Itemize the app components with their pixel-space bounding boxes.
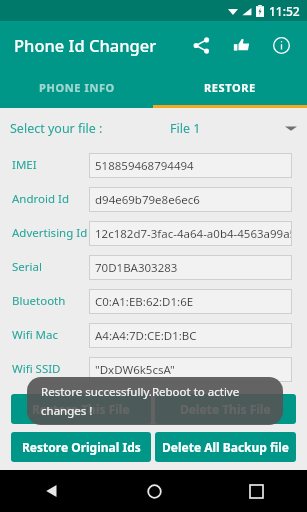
button[interactable]: Delete All Backup file [155, 432, 296, 462]
staticText: Bluetooth Mac [12, 293, 89, 309]
staticText: Wifi SSID [12, 361, 61, 377]
button[interactable]: PHONE INFO [0, 69, 153, 105]
button[interactable]: Home [103, 470, 205, 512]
button[interactable]: 70D1BA303283 [89, 255, 292, 280]
staticText: C0:A1:EB:62:D1:6E [95, 294, 194, 310]
button[interactable]: Rate [221, 25, 261, 65]
staticText: Android Id [12, 191, 70, 207]
button[interactable]: Back [0, 470, 103, 512]
staticText: d94e69b79e8e6ec6 [95, 192, 200, 208]
staticText: 70D1BA303283 [95, 260, 178, 276]
staticText: Select your file : [10, 120, 103, 137]
button[interactable]: A4:A4:7D:CE:D1:BC [89, 323, 292, 348]
button[interactable]: Share [181, 25, 221, 65]
button[interactable]: Info [261, 25, 301, 65]
staticText: PHONE INFO [39, 80, 115, 95]
button[interactable]: d94e69b79e8e6ec6 [89, 187, 292, 212]
staticText: A4:A4:7D:CE:D1:BC [95, 328, 197, 344]
button[interactable]: Delete This File [155, 394, 296, 424]
staticText: Restore Original Ids [22, 439, 141, 455]
button[interactable]: Restore This File [11, 394, 151, 424]
staticText: 518859468794494 [95, 158, 194, 174]
staticText: Phone Id Changer [14, 34, 157, 56]
button[interactable]: Recents [205, 470, 307, 512]
staticText: RESTORE [204, 80, 256, 95]
staticText: "DxDW6k5csA" [95, 362, 175, 378]
button[interactable]: RESTORE [153, 69, 307, 105]
staticText: Restore This File [32, 401, 130, 417]
staticText: Delete All Backup file [162, 439, 290, 455]
staticText: File 1 [170, 120, 201, 137]
staticText: Restore successfully.Reboot to active [41, 384, 240, 400]
button[interactable]: Select your file : [0, 108, 307, 148]
other: Dropdown [285, 122, 297, 134]
button[interactable]: C0:A1:EB:62:D1:6E [89, 289, 292, 314]
staticText: Wifi Mac [12, 327, 58, 343]
staticText: 12c182d7-3fac-4a64-a0b4-4563a99a50 [95, 226, 292, 242]
staticText: Advertising Id [12, 225, 88, 241]
button[interactable]: 12c182d7-3fac-4a64-a0b4-4563a99a50 [89, 221, 292, 246]
staticText: Delete This File [180, 401, 271, 417]
staticText: IMEI [12, 157, 37, 173]
button[interactable]: Restore Original Ids [11, 432, 151, 462]
button[interactable]: "DxDW6k5csA" [89, 357, 292, 382]
staticText: 11:52 [269, 3, 300, 19]
staticText: Serial [12, 259, 42, 275]
staticText: changes ! [41, 403, 93, 419]
button[interactable]: 518859468794494 [89, 153, 292, 178]
